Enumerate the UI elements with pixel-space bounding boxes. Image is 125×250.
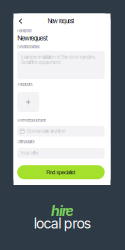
staticText: Offer your price [17,139,35,144]
staticText: Choose date and time [26,128,66,134]
staticText: Add pictures [17,82,33,86]
button[interactable]: Find specialist [17,165,105,179]
staticText: Your offer [20,150,39,156]
staticText: Example: installation of five door handl… [21,54,95,65]
staticText: Handyman [17,28,32,33]
staticText: hire [51,202,73,219]
button[interactable]: Choose date and time [17,126,105,136]
staticText: New request [47,18,74,25]
button[interactable]: Add picture [17,92,39,112]
staticText: Find specialist [46,169,76,175]
staticText: local pros [34,215,91,232]
button[interactable]: Your offer [17,148,105,158]
staticText: Describe your task [17,45,40,49]
staticText: When needs to be done [17,118,46,122]
button[interactable]: Back [15,15,27,27]
staticText: New request [17,34,48,42]
